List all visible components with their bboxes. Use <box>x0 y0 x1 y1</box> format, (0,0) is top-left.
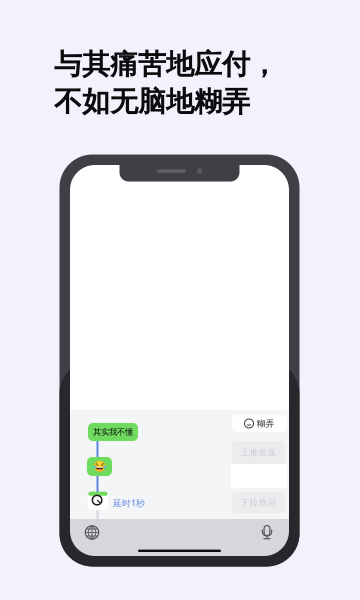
staticText: 糊弄 <box>256 418 274 429</box>
staticText: 延时1秒 <box>113 497 145 509</box>
staticText: 上推发送 <box>240 447 276 458</box>
button[interactable]: 上推发送 <box>232 441 285 464</box>
button[interactable]: 糊弄 <box>232 415 287 432</box>
button[interactable]: 下拉抢词 <box>232 492 285 513</box>
staticText: 下拉抢词 <box>240 497 276 508</box>
staticText: 😂 <box>93 460 106 473</box>
button[interactable]: Switch keyboard <box>81 521 103 543</box>
staticText: 其实我不懂 <box>93 427 133 437</box>
staticText: 与其痛苦地应付， <box>54 47 278 81</box>
staticText: 不如无脑地糊弄 <box>54 84 250 119</box>
button[interactable]: Dictation <box>256 521 278 543</box>
